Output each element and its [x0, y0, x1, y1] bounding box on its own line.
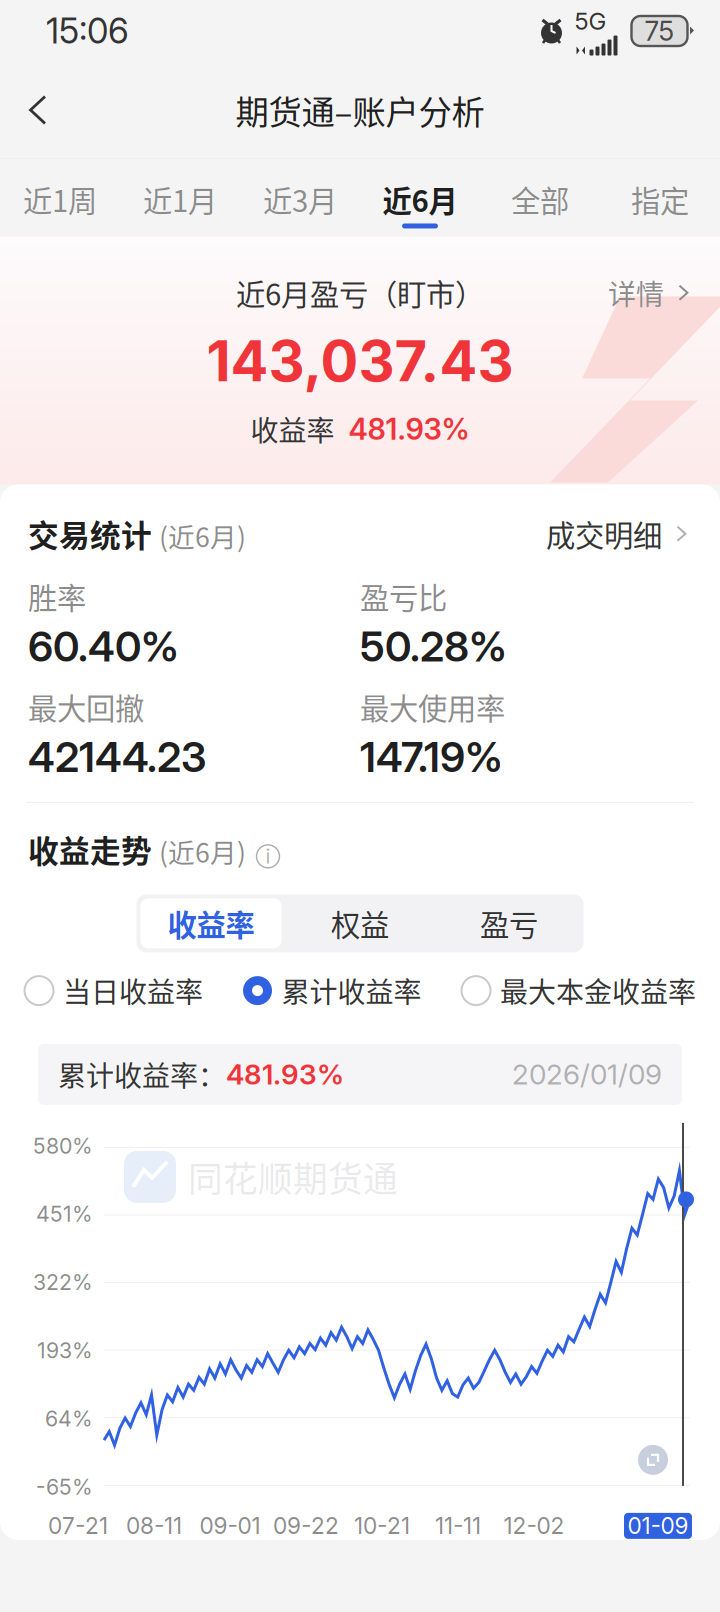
- button[interactable]: 全部: [480, 159, 600, 236]
- staticText: 收益走势: [28, 827, 152, 871]
- staticText: 当日收益率: [63, 970, 203, 1011]
- staticText: 451%: [36, 1201, 93, 1227]
- staticText: 成交明细: [546, 512, 662, 555]
- staticText: i: [265, 844, 270, 868]
- button[interactable]: 最大本金收益率: [461, 966, 696, 1015]
- staticText: 近3月: [263, 178, 337, 220]
- staticText: 最大使用率: [360, 685, 505, 728]
- staticText: 147.19%: [360, 732, 503, 782]
- staticText: 08-11: [126, 1512, 182, 1540]
- staticText: 近6月盈亏（盯市）: [236, 271, 484, 314]
- staticText: 09-01: [199, 1512, 260, 1540]
- button[interactable]: 近1周: [0, 159, 120, 236]
- staticText: 50.28%: [360, 621, 507, 671]
- staticText: 交易统计: [28, 511, 152, 556]
- staticText: 60.40%: [28, 621, 179, 671]
- staticText: 481.93%: [226, 1057, 344, 1091]
- staticText: 权益: [331, 902, 389, 945]
- staticText: 322%: [33, 1269, 93, 1295]
- staticText: 10-21: [354, 1512, 410, 1540]
- button[interactable]: 详情: [604, 264, 698, 321]
- staticText: 最大本金收益率: [500, 970, 696, 1011]
- staticText: 详情: [608, 272, 664, 313]
- staticText: 42144.23: [28, 732, 206, 782]
- button[interactable]: 近6月: [360, 159, 480, 236]
- button[interactable]: 当日收益率: [24, 966, 203, 1015]
- staticText: 盈亏: [480, 902, 538, 945]
- staticText: 09-22: [273, 1512, 339, 1540]
- staticText: 580%: [33, 1133, 93, 1159]
- staticText: (近6月): [159, 832, 246, 870]
- button[interactable]: 近1月: [120, 159, 240, 236]
- staticText: 近6月: [382, 178, 457, 220]
- staticText: 累计收益率：: [58, 1054, 226, 1095]
- staticText: -65%: [36, 1474, 93, 1500]
- staticText: (近6月): [159, 516, 246, 555]
- staticText: 07-21: [48, 1512, 108, 1540]
- button[interactable]: Expand chart: [638, 1445, 668, 1475]
- staticText: 胜率: [28, 575, 86, 617]
- staticText: 2026/01/09: [512, 1057, 662, 1091]
- staticText: 指定: [631, 178, 689, 220]
- button[interactable]: 成交明细: [546, 506, 692, 561]
- staticText: 收益率: [250, 409, 334, 449]
- staticText: 盈亏比: [360, 575, 447, 617]
- staticText: 11-11: [435, 1512, 481, 1540]
- button[interactable]: 收益率: [136, 894, 285, 952]
- button[interactable]: 累计收益率: [242, 966, 421, 1015]
- staticText: 64%: [45, 1406, 93, 1432]
- button[interactable]: 近3月: [240, 159, 360, 236]
- staticText: 近1周: [23, 178, 97, 220]
- staticText: 75: [644, 15, 674, 47]
- staticText: 近1月: [143, 178, 217, 220]
- staticText: 最大回撤: [28, 685, 144, 728]
- staticText: 全部: [511, 178, 569, 220]
- button[interactable]: 指定: [600, 159, 720, 236]
- staticText: 12-02: [503, 1512, 564, 1540]
- button[interactable]: Back: [0, 73, 76, 147]
- staticText: 01-09: [627, 1512, 688, 1540]
- staticText: 收益率: [167, 902, 254, 945]
- staticText: 累计收益率: [281, 970, 421, 1011]
- staticText: 481.93%: [348, 411, 469, 447]
- staticText: 同花顺期货通: [188, 1152, 398, 1202]
- staticText: 15:06: [46, 10, 129, 52]
- staticText: 143,037.43: [206, 327, 513, 395]
- button[interactable]: 权益: [285, 894, 434, 952]
- staticText: 5G: [574, 6, 606, 35]
- button[interactable]: 盈亏: [434, 894, 583, 952]
- staticText: 期货通–账户分析: [235, 86, 484, 134]
- staticText: 193%: [37, 1338, 93, 1363]
